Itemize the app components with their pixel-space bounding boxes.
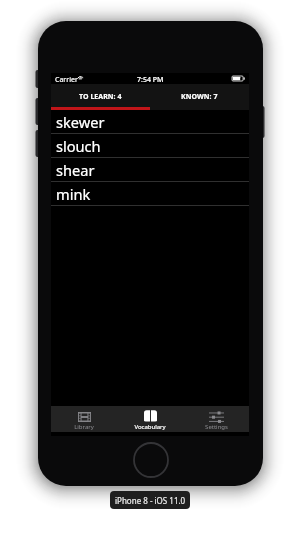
staticText: skewer <box>56 112 105 132</box>
button[interactable]: Library <box>51 406 117 432</box>
staticText: Library <box>74 423 94 431</box>
staticText: slouch <box>56 136 101 156</box>
button[interactable]: KNOWN: 7 <box>150 84 249 110</box>
staticText: KNOWN: 7 <box>181 92 218 102</box>
button[interactable]: skewer <box>51 110 249 134</box>
button[interactable]: Settings <box>183 406 249 432</box>
button[interactable]: slouch <box>51 134 249 158</box>
staticText: mink <box>56 184 91 204</box>
staticText: iPhone 8 - iOS 11.0 <box>115 495 186 506</box>
staticText: Carrier <box>55 75 78 85</box>
staticText: shear <box>56 160 95 180</box>
button[interactable]: TO LEARN: 4 <box>51 84 150 110</box>
staticText: TO LEARN: 4 <box>79 92 122 102</box>
staticText: Vocabulary <box>134 423 166 431</box>
staticText: Settings <box>205 423 228 431</box>
button[interactable]: Vocabulary <box>117 406 183 432</box>
staticText: 7:54 PM <box>137 75 164 85</box>
button[interactable]: shear <box>51 158 249 182</box>
button[interactable]: mink <box>51 182 249 206</box>
